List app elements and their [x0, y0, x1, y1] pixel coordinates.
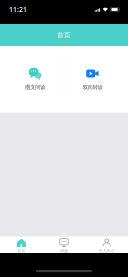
button[interactable]: 消息 — [43, 239, 85, 253]
staticText: 11:21 — [9, 5, 27, 14]
staticText: 个人中心 — [99, 248, 115, 253]
staticText: 首页 — [57, 31, 71, 39]
staticText: 图文问诊 — [25, 84, 45, 91]
staticText: 双向转诊 — [83, 84, 103, 91]
button[interactable]: 首页 — [0, 239, 43, 253]
staticText: 消息 — [60, 248, 68, 253]
button[interactable]: 个人中心 — [85, 239, 128, 253]
button[interactable]: 双向转诊 — [64, 46, 121, 113]
button[interactable]: 图文问诊 — [7, 46, 64, 113]
staticText: 首页 — [17, 248, 25, 253]
